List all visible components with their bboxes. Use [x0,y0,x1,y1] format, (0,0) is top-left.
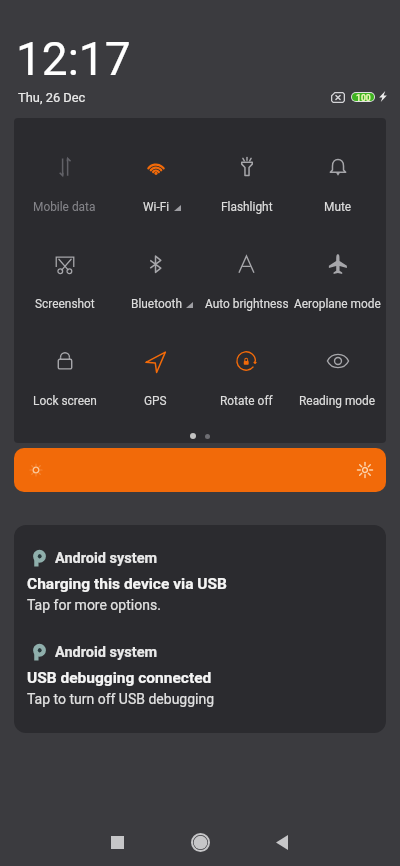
staticText: 100 [356,93,371,101]
button[interactable]: Rotate off [201,312,292,408]
button[interactable]: Recents [94,819,140,865]
staticText: 12:17 [16,32,131,86]
staticText: USB debugging connected [27,669,212,687]
staticText: Charging this device via USB [27,575,227,593]
staticText: Reading mode [299,394,376,408]
button[interactable]: Home [177,819,223,865]
staticText: Tap for more options. [27,597,161,613]
button[interactable]: Mobile data [19,118,110,214]
staticText: Mobile data [33,200,96,214]
staticText: Android system [55,644,158,661]
staticText: Rotate off [220,394,273,408]
staticText: Thu, 26 Dec [18,90,86,105]
staticText: Lock screen [33,394,97,408]
button[interactable]: Mute [292,118,383,214]
staticText: Android system [55,550,158,567]
button[interactable]: Bluetooth [110,215,201,311]
button[interactable]: GPS [110,312,201,408]
button[interactable]: Auto brightness [201,215,292,311]
button[interactable]: Back [259,819,305,865]
staticText: Tap to turn off USB debugging [27,691,215,707]
staticText: Auto brightness [205,297,289,311]
staticText: Aeroplane mode [294,297,381,311]
button[interactable]: Brightness [14,448,386,492]
button[interactable]: Wi-Fi [110,118,201,214]
button[interactable]: Reading mode [292,312,383,408]
staticText: Bluetooth [131,297,182,311]
button[interactable]: Android system [14,619,386,713]
staticText: Screenshot [35,297,95,311]
button[interactable]: Android system [14,525,386,619]
button[interactable]: Aeroplane mode [292,215,383,311]
staticText: Wi-Fi [143,200,170,214]
staticText: Mute [324,200,352,214]
button[interactable]: Lock screen [19,312,110,408]
button[interactable]: Flashlight [201,118,292,214]
staticText: GPS [144,394,167,408]
staticText: Flashlight [221,200,273,214]
button[interactable]: Screenshot [19,215,110,311]
